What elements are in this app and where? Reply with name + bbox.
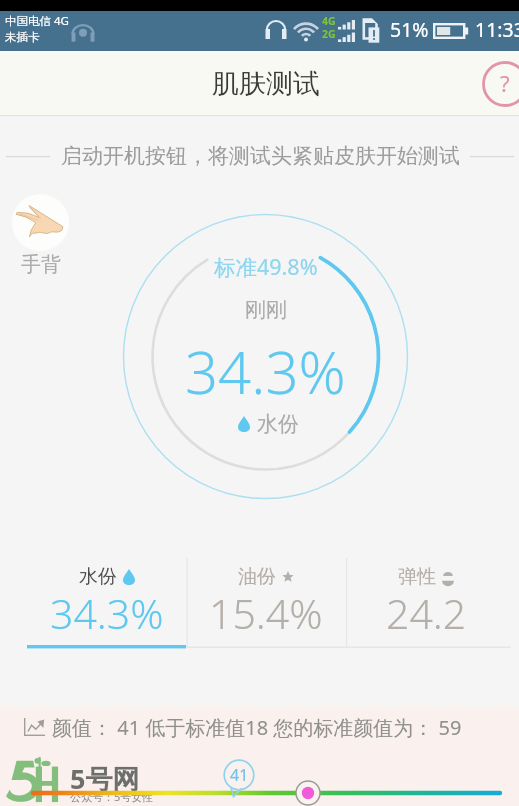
staticText: 刚刚 bbox=[245, 297, 287, 323]
staticText: 颜值： 41 低于标准值18 您的标准颜值为： 59 bbox=[52, 714, 462, 741]
staticText: 油份 bbox=[238, 565, 276, 589]
staticText: 手背 bbox=[21, 252, 61, 277]
button[interactable]: 手背 bbox=[12, 194, 69, 277]
staticText: 标准49.8% bbox=[214, 252, 318, 280]
staticText: 15.4% bbox=[209, 585, 323, 641]
staticText: 未插卡 bbox=[5, 30, 40, 44]
staticText: 11:33 bbox=[475, 16, 519, 43]
staticText: 5号网 bbox=[70, 760, 140, 797]
staticText: 肌肤测试 bbox=[212, 67, 320, 101]
staticText: 水份 bbox=[79, 565, 117, 589]
staticText: ? bbox=[500, 68, 510, 98]
staticText: 41 bbox=[230, 764, 249, 786]
staticText: 34.3% bbox=[50, 585, 164, 641]
staticText: 24.2 bbox=[386, 585, 467, 641]
button[interactable]: 水份 bbox=[27, 558, 186, 648]
button[interactable]: 弹性 bbox=[346, 558, 506, 648]
button[interactable]: Help bbox=[477, 56, 519, 112]
staticText: 启动开机按钮，将测试头紧贴皮肤开始测试 bbox=[61, 143, 460, 169]
staticText: 2G bbox=[322, 27, 336, 41]
staticText: 中国电信 4G bbox=[5, 13, 69, 29]
staticText: 公众号：5号女性 bbox=[70, 789, 154, 804]
staticText: 51% bbox=[390, 16, 429, 43]
staticText: 弹性 bbox=[398, 565, 436, 589]
button[interactable]: 油份 bbox=[186, 558, 346, 648]
staticText: 4G bbox=[322, 14, 336, 28]
staticText: 34.3% bbox=[185, 332, 346, 404]
staticText: 水份 bbox=[257, 411, 299, 437]
